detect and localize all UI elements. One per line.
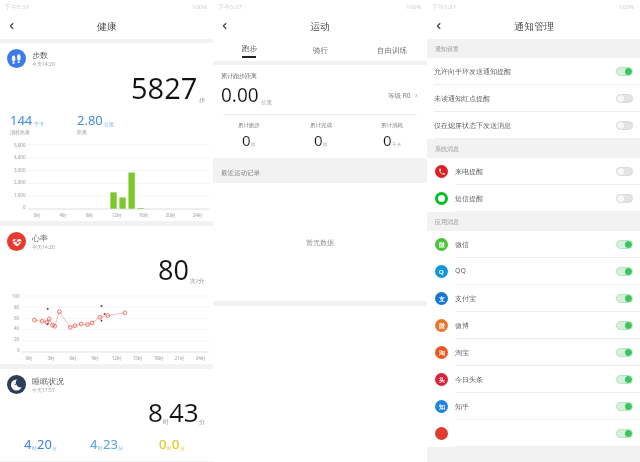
- staticText: 100%: [406, 3, 422, 11]
- button[interactable]: 允许向手环发送通知提醒: [427, 58, 640, 84]
- staticText: 分: [199, 418, 205, 426]
- staticText: 次: [251, 142, 256, 148]
- staticText: 15时: [127, 355, 148, 361]
- staticText: 4,000: [14, 154, 26, 160]
- staticText: 8: [148, 394, 163, 429]
- staticText: 0时: [24, 212, 50, 218]
- staticText: 分: [52, 445, 57, 451]
- staticText: 21时: [169, 355, 190, 361]
- button[interactable]: Off: [616, 94, 633, 103]
- button[interactable]: 睡眠状况: [0, 369, 213, 461]
- button[interactable]: Off: [616, 121, 633, 130]
- button[interactable]: 微: [427, 312, 640, 338]
- staticText: 下午5:37: [218, 3, 242, 11]
- staticText: 短信提醒: [455, 194, 483, 203]
- staticText: 允许向手环发送通知提醒: [434, 67, 511, 76]
- staticText: 100%: [619, 3, 635, 11]
- staticText: 16时: [130, 212, 157, 218]
- staticText: 8时: [76, 212, 103, 218]
- button[interactable]: 头: [427, 366, 640, 392]
- staticText: 43: [169, 394, 199, 429]
- staticText: 0: [17, 347, 20, 353]
- staticText: 心率: [32, 233, 48, 243]
- staticText: QQ: [455, 266, 466, 276]
- button[interactable]: Off: [616, 194, 633, 203]
- button[interactable]: On: [616, 429, 633, 438]
- button[interactable]: 支: [427, 285, 640, 311]
- staticText: 自由训练: [377, 46, 407, 55]
- staticText: 时: [167, 445, 172, 451]
- staticText: 今日头条: [455, 375, 483, 384]
- staticText: 60: [14, 315, 20, 321]
- button[interactable]: 仅在熄屏状态下发送消息: [427, 112, 640, 138]
- button[interactable]: Back: [0, 14, 24, 38]
- button[interactable]: On: [616, 375, 633, 384]
- button[interactable]: On: [616, 240, 633, 249]
- staticText: 知: [439, 403, 445, 411]
- staticText: 2.80: [77, 111, 103, 129]
- button[interactable]: On: [616, 321, 633, 330]
- staticText: 次/分: [190, 277, 205, 285]
- button[interactable]: Off: [616, 167, 633, 176]
- staticText: 0时: [18, 355, 40, 361]
- button[interactable]: 来电提醒: [427, 158, 640, 184]
- staticText: 时: [163, 418, 169, 426]
- button[interactable]: 跑步: [213, 39, 285, 61]
- staticText: 4: [24, 435, 32, 453]
- staticText: 公里: [104, 121, 114, 127]
- button[interactable]: Back: [427, 14, 451, 38]
- staticText: 5827: [131, 68, 198, 107]
- staticText: 12时: [106, 355, 127, 361]
- button[interactable]: 等级 R0: [388, 91, 419, 100]
- staticText: 5,000: [14, 142, 26, 148]
- staticText: 100: [12, 293, 20, 299]
- staticText: 40: [14, 325, 20, 331]
- button[interactable]: 微: [427, 231, 640, 257]
- staticText: 3,000: [14, 167, 26, 173]
- button[interactable]: 淘: [427, 339, 640, 365]
- button[interactable]: 骑行: [285, 39, 356, 61]
- staticText: 24时: [184, 212, 211, 218]
- staticText: 健康: [97, 20, 117, 33]
- button[interactable]: 短信提醒: [427, 185, 640, 211]
- button[interactable]: On: [616, 67, 633, 76]
- staticText: 次: [323, 142, 328, 148]
- staticText: 通知设置: [435, 45, 459, 53]
- staticText: 0: [159, 435, 167, 453]
- staticText: 通知管理: [514, 20, 554, 33]
- staticText: 暂无数据: [306, 238, 334, 247]
- button[interactable]: On: [616, 294, 633, 303]
- staticText: 系统消息: [435, 145, 459, 153]
- staticText: 骑行: [313, 46, 328, 55]
- staticText: 累计跑步距离: [221, 72, 257, 80]
- staticText: 头: [439, 376, 445, 384]
- staticText: 4: [90, 435, 98, 453]
- staticText: 微信: [455, 240, 469, 249]
- button[interactable]: On: [427, 420, 640, 446]
- button[interactable]: On: [616, 402, 633, 411]
- staticText: 步数: [32, 50, 48, 60]
- staticText: 来电提醒: [455, 167, 483, 176]
- button[interactable]: On: [616, 267, 633, 276]
- staticText: 100%: [192, 3, 208, 11]
- button[interactable]: 知: [427, 393, 640, 419]
- staticText: 144: [10, 111, 33, 129]
- button[interactable]: 自由训练: [356, 39, 427, 61]
- staticText: 分: [180, 445, 185, 451]
- button[interactable]: On: [616, 348, 633, 357]
- staticText: 12时: [103, 212, 130, 218]
- button[interactable]: 心率: [0, 226, 213, 364]
- staticText: 微: [439, 241, 445, 249]
- button[interactable]: 未读通知红点提醒: [427, 85, 640, 111]
- staticText: 支: [439, 295, 445, 303]
- button[interactable]: 步数: [0, 43, 213, 221]
- staticText: 等级 R0: [388, 91, 411, 100]
- staticText: 0.00: [221, 82, 259, 108]
- button[interactable]: Back: [213, 14, 237, 38]
- staticText: 1,000: [14, 192, 26, 198]
- staticText: 4时: [50, 212, 76, 218]
- button[interactable]: Q: [427, 258, 640, 284]
- staticText: 24时: [190, 355, 211, 361]
- staticText: 20: [37, 435, 52, 453]
- staticText: 淘宝: [455, 348, 469, 357]
